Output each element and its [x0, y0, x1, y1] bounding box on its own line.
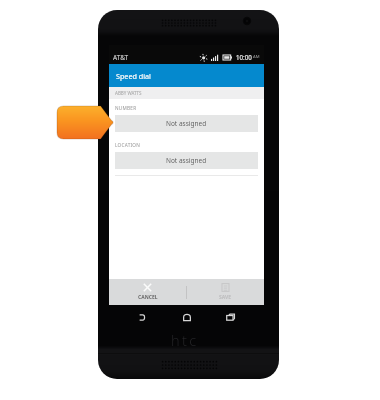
staticText: AT&T [113, 53, 129, 62]
staticText: 10:00 [236, 53, 252, 61]
staticText: LOCATION [115, 142, 141, 148]
button[interactable]: Recent apps [221, 308, 239, 326]
staticText: CANCEL [138, 294, 158, 301]
staticText: htc [171, 330, 199, 346]
button[interactable]: CANCEL [109, 279, 186, 305]
staticText: ABBY WATTS [115, 90, 142, 96]
staticText: AM [253, 54, 260, 60]
button[interactable]: Back [133, 308, 151, 326]
staticText: SAVE [219, 294, 232, 301]
staticText: Not assigned [166, 119, 207, 128]
button[interactable]: Home [178, 308, 196, 326]
button[interactable]: SAVE [187, 279, 264, 305]
button[interactable]: Not assigned [115, 115, 258, 132]
staticText: Not assigned [166, 156, 207, 165]
staticText: Speed dial [116, 71, 151, 81]
staticText: NUMBER [115, 105, 137, 111]
button[interactable]: Not assigned [115, 152, 258, 169]
button[interactable]: Speed dial [109, 64, 264, 87]
